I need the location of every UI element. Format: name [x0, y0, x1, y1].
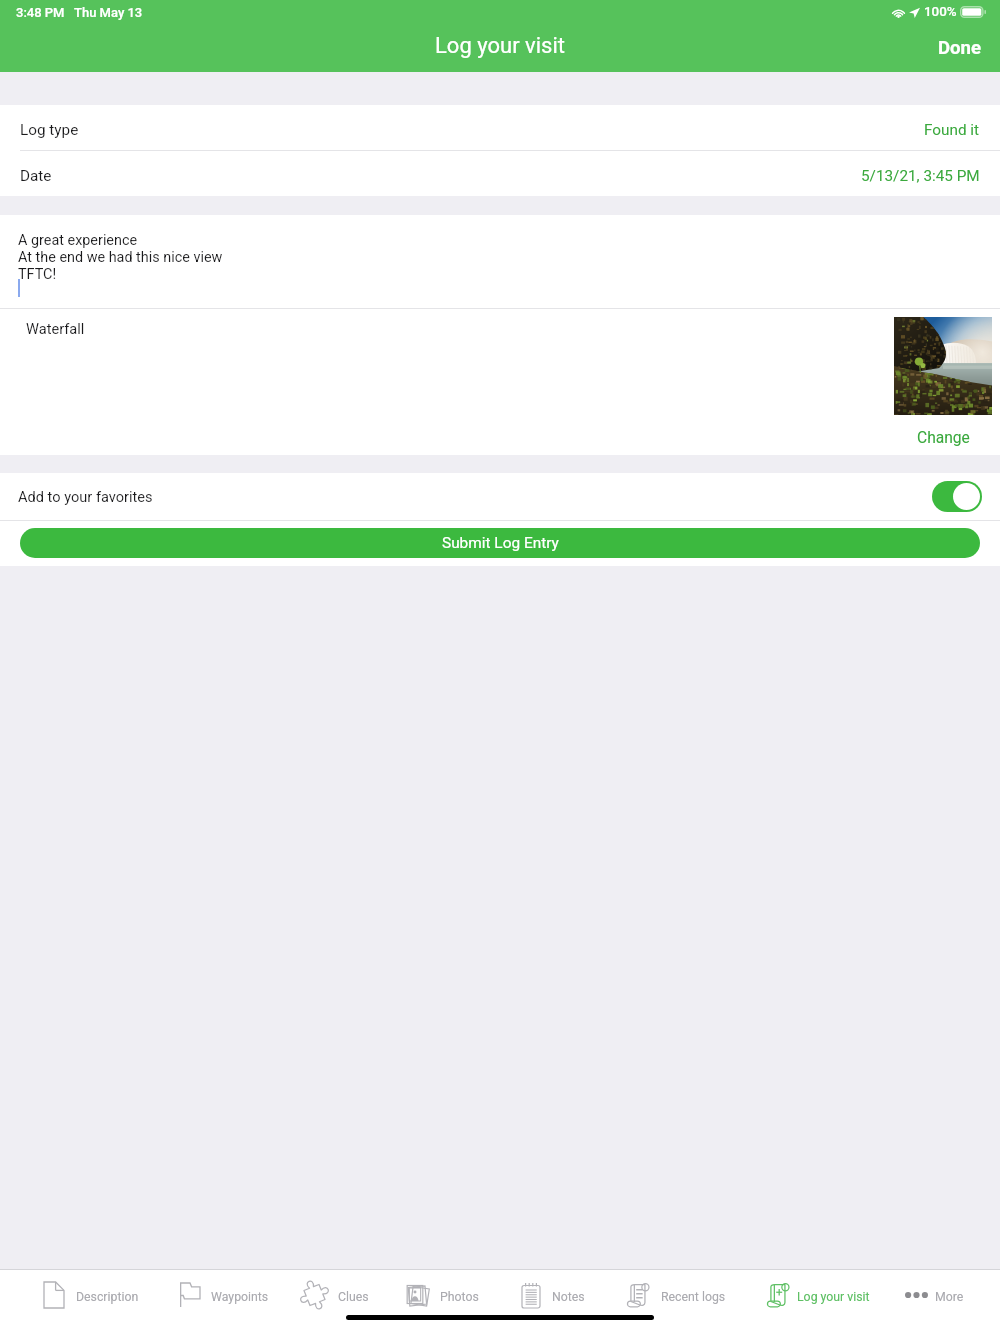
- staticText: Date: [20, 167, 52, 185]
- staticText: Done: [938, 37, 982, 59]
- staticText: A great experience: [18, 232, 138, 249]
- staticText: 100%: [924, 4, 957, 20]
- staticText: Log your visit: [435, 33, 565, 59]
- button[interactable]: Date: [0, 151, 1000, 196]
- button[interactable]: A great experience: [0, 215, 1000, 308]
- button[interactable]: Add to favorites toggle: [932, 481, 982, 512]
- staticText: 5/13/21, 3:45 PM: [861, 167, 980, 185]
- button[interactable]: Change: [913, 423, 974, 445]
- button[interactable]: Clues: [287, 1270, 383, 1316]
- button[interactable]: Waypoints: [166, 1270, 283, 1316]
- button[interactable]: Notes: [508, 1270, 599, 1316]
- button[interactable]: Add to your favorites: [0, 473, 1000, 520]
- staticText: Thu May 13: [74, 5, 143, 20]
- staticText: Change: [917, 429, 970, 447]
- staticText: Log your visit: [797, 1290, 870, 1304]
- staticText: Description: [76, 1290, 139, 1304]
- staticText: More: [935, 1290, 964, 1304]
- staticText: Add to your favorites: [18, 488, 153, 505]
- staticText: Clues: [338, 1290, 369, 1304]
- button[interactable]: Recent logs: [613, 1270, 740, 1316]
- button[interactable]: Done: [918, 31, 1000, 65]
- button[interactable]: Photos: [391, 1270, 493, 1316]
- staticText: Waterfall: [26, 320, 85, 337]
- staticText: Recent logs: [661, 1290, 726, 1304]
- staticText: Photos: [440, 1290, 479, 1304]
- button[interactable]: Description: [30, 1270, 153, 1316]
- staticText: Log type: [20, 121, 79, 139]
- button[interactable]: Log type: [0, 105, 1000, 150]
- staticText: Submit Log Entry: [442, 534, 559, 552]
- staticText: Found it: [924, 121, 980, 139]
- staticText: At the end we had this nice view: [18, 249, 223, 266]
- staticText: TFTC!: [18, 266, 57, 283]
- staticText: Notes: [552, 1290, 585, 1304]
- staticText: 3:48 PM: [16, 5, 65, 20]
- button[interactable]: More: [891, 1270, 978, 1316]
- staticText: Waypoints: [211, 1290, 269, 1304]
- button[interactable]: Log your visit: [753, 1270, 884, 1316]
- button[interactable]: Submit Log Entry: [20, 528, 980, 558]
